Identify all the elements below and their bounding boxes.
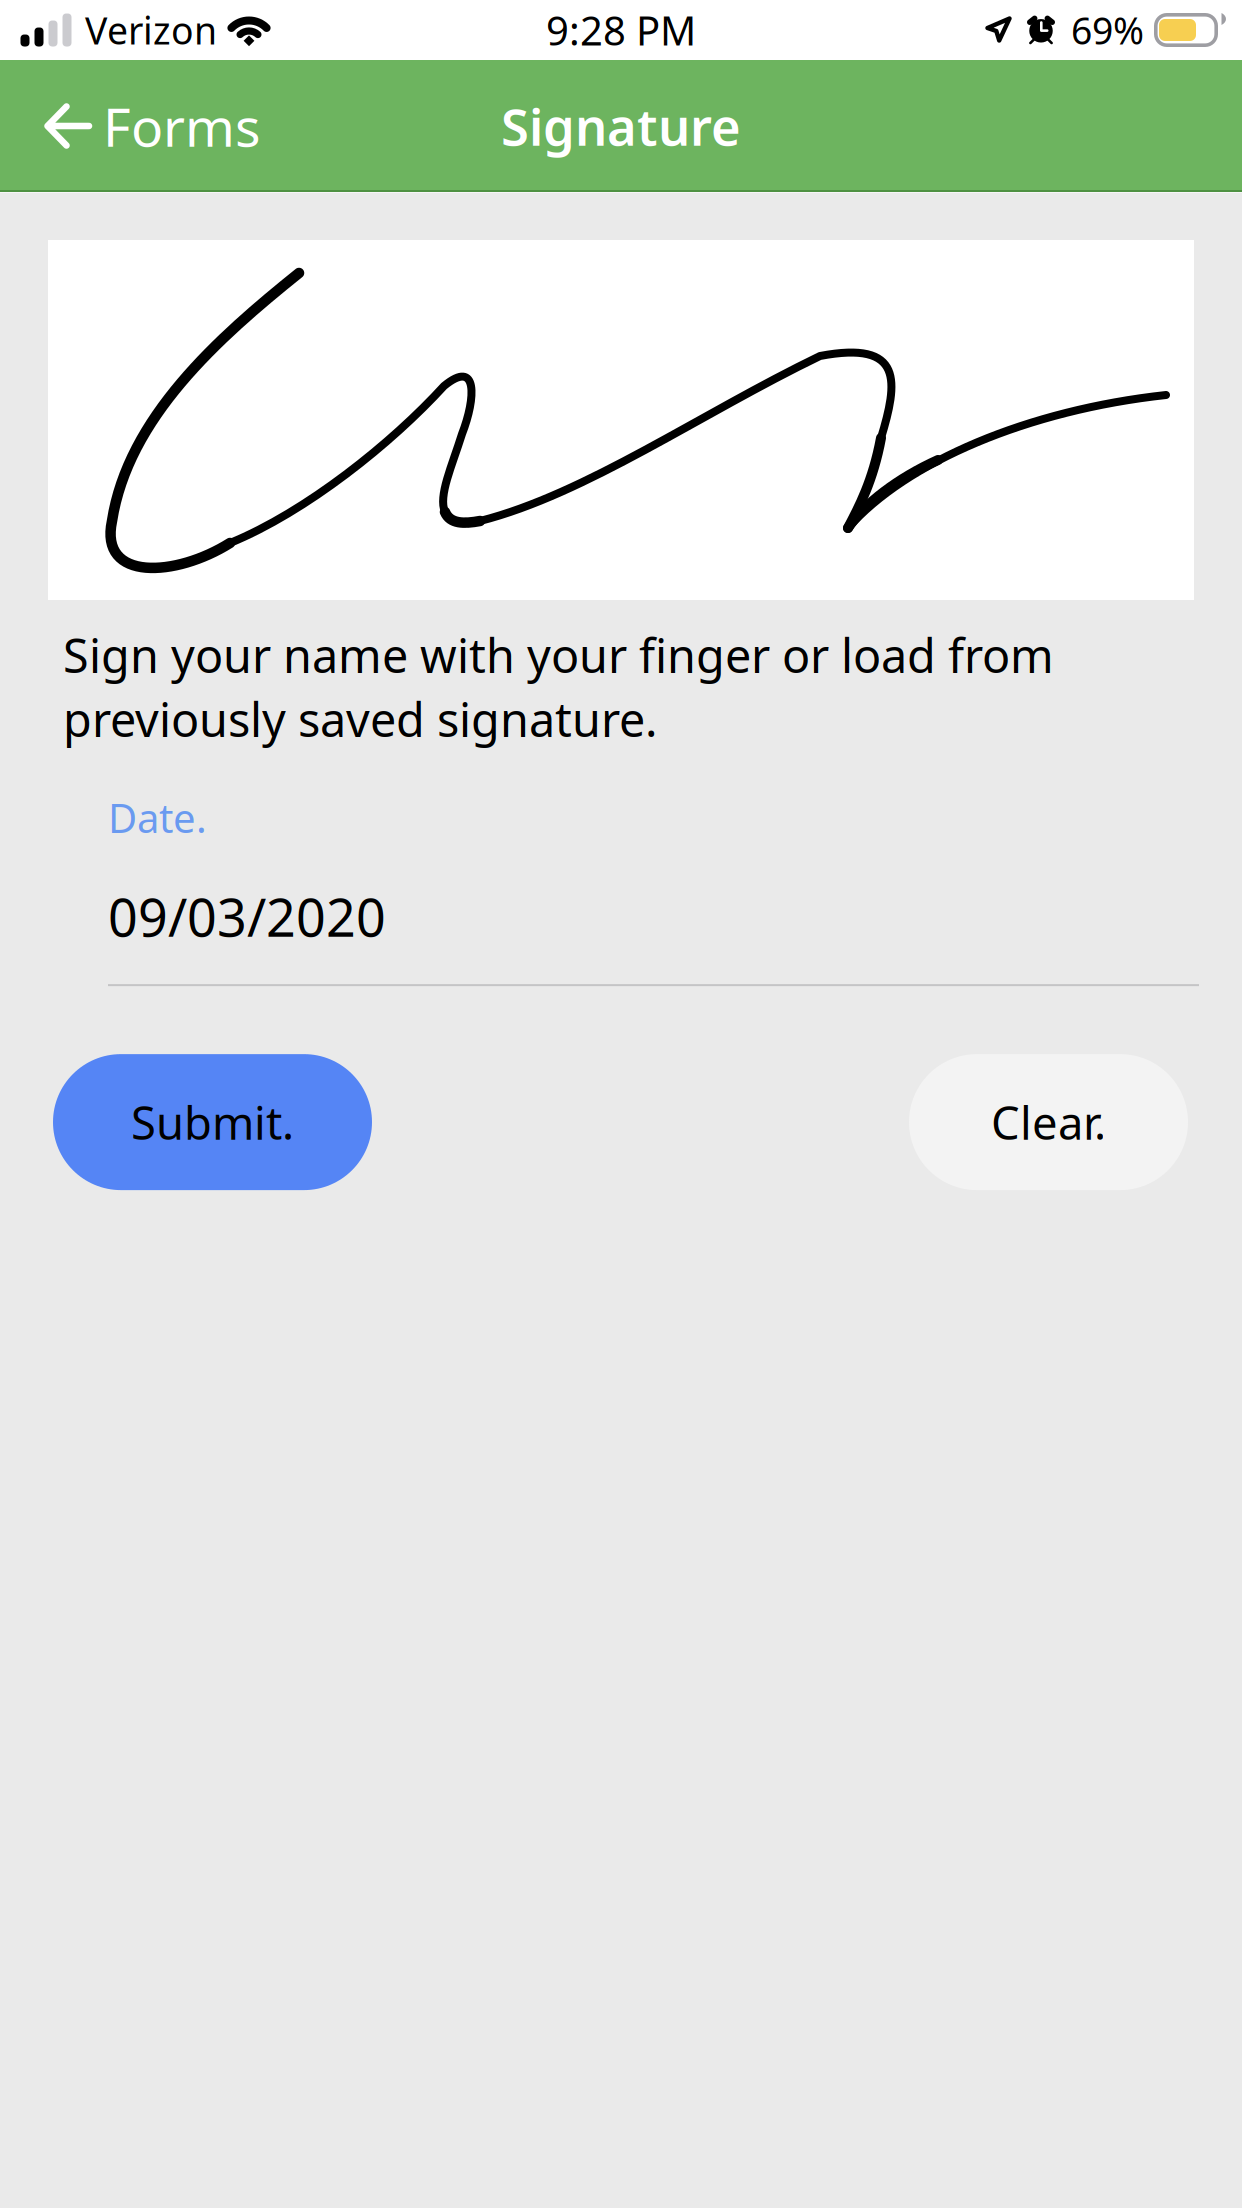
button[interactable]: Back to Forms xyxy=(0,60,285,192)
staticText: Verizon xyxy=(85,5,217,55)
staticText: Date. xyxy=(108,791,207,844)
staticText: Submit. xyxy=(131,1092,294,1152)
staticText: Sign your name with your finger or load … xyxy=(63,624,1054,750)
staticText: Signature xyxy=(501,92,741,160)
staticText: 09/03/2020 xyxy=(108,882,386,951)
staticText: Clear. xyxy=(991,1092,1106,1152)
button[interactable]: Clear. xyxy=(909,1054,1188,1190)
staticText: 69% xyxy=(1071,5,1144,55)
staticText: 9:28 PM xyxy=(546,3,696,56)
button[interactable]: Signature drawing area xyxy=(48,240,1194,600)
staticText: Forms xyxy=(103,91,261,161)
button[interactable]: Submit. xyxy=(53,1054,372,1190)
